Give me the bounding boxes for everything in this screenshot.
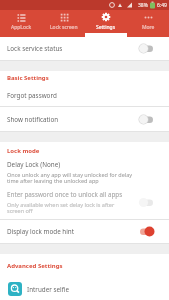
staticText: Settings xyxy=(96,24,116,31)
staticText: Delay Lock (None) xyxy=(7,160,61,169)
staticText: Once unlock any app will stay unlocked f… xyxy=(7,171,133,185)
staticText: AppLock xyxy=(11,24,32,31)
button[interactable]: Intruder selfie xyxy=(0,272,169,300)
staticText: Lock mode xyxy=(7,147,40,155)
staticText: Lock service status xyxy=(7,44,63,53)
button[interactable]: Delay Lock (None) xyxy=(0,158,169,186)
staticText: Intruder selfie xyxy=(27,285,69,294)
staticText: Lock screen xyxy=(50,24,78,31)
button[interactable]: More xyxy=(127,10,169,37)
button[interactable]: AppLock xyxy=(0,10,43,37)
staticText: Show notification xyxy=(7,115,59,124)
staticText: Basic Settings xyxy=(7,74,49,82)
staticText: 6:49 xyxy=(157,2,167,9)
staticText: Forgot password xyxy=(7,91,57,100)
button[interactable]: Show notification xyxy=(0,107,169,131)
staticText: Only available when set delay lock is af… xyxy=(7,201,115,215)
staticText: Display lock mode hint xyxy=(7,227,75,236)
button[interactable]: Lock screen xyxy=(43,10,85,37)
button[interactable]: Settings xyxy=(85,10,127,37)
button[interactable]: Lock service status xyxy=(0,37,169,60)
button[interactable]: Forgot password xyxy=(0,84,169,106)
staticText: 38% xyxy=(138,2,148,9)
staticText: More xyxy=(142,24,155,31)
button[interactable]: Enter password once to unlock all apps xyxy=(0,186,169,219)
staticText: Advanced Settings xyxy=(7,262,63,270)
button[interactable]: Display lock mode hint xyxy=(0,220,169,243)
staticText: Enter password once to unlock all apps xyxy=(7,190,123,199)
